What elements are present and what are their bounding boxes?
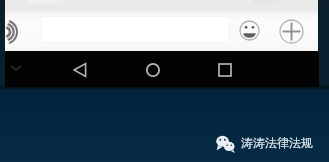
button[interactable]: Recent apps [207, 52, 243, 87]
button[interactable]: Voice input [5, 21, 27, 43]
button[interactable]: More options [274, 14, 308, 48]
button[interactable]: 涛涛法律法规 [216, 133, 313, 152]
button[interactable]: Home [135, 52, 171, 87]
button[interactable] [41, 16, 230, 43]
button[interactable]: Emoji [233, 14, 265, 46]
button[interactable]: Back [62, 52, 98, 87]
staticText: 涛涛法律法规 [241, 135, 313, 150]
button[interactable]: Hide keyboard [4, 56, 28, 80]
